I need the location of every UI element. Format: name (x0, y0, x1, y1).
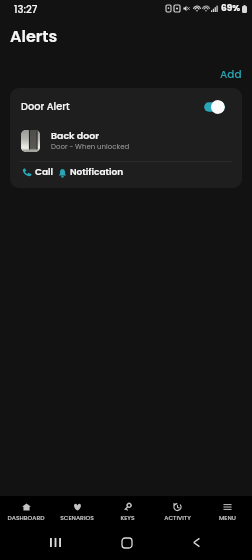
staticText: 69% (221, 2, 241, 15)
staticText: Notification (70, 166, 124, 179)
staticText: Back door (51, 129, 99, 142)
button[interactable]: Door alert toggle (204, 100, 225, 114)
staticText: SCENARIOS (60, 514, 94, 522)
button[interactable]: Home (117, 533, 136, 552)
button[interactable]: Door Alert (10, 88, 242, 188)
staticText: Door Alert (21, 100, 70, 114)
button[interactable]: MENU (202, 496, 252, 528)
staticText: Call (35, 166, 54, 179)
staticText: Alerts (10, 25, 58, 47)
button[interactable]: KEYS (102, 496, 152, 528)
button[interactable]: Add (210, 61, 252, 88)
button[interactable]: Notification (57, 166, 125, 179)
staticText: KEYS (120, 514, 135, 522)
button[interactable]: ACTIVITY (152, 496, 202, 528)
button[interactable]: DASHBOARD (0, 496, 51, 528)
button[interactable]: Back (187, 533, 206, 552)
staticText: ACTIVITY (164, 514, 191, 522)
button[interactable]: Recent apps (46, 533, 65, 552)
staticText: Add (220, 67, 242, 82)
staticText: Door - When unlocked (51, 142, 130, 152)
staticText: MENU (219, 514, 236, 522)
staticText: DASHBOARD (7, 514, 45, 522)
button[interactable]: SCENARIOS (51, 496, 102, 528)
staticText: 13:27 (14, 2, 38, 16)
button[interactable]: Call (21, 166, 55, 179)
